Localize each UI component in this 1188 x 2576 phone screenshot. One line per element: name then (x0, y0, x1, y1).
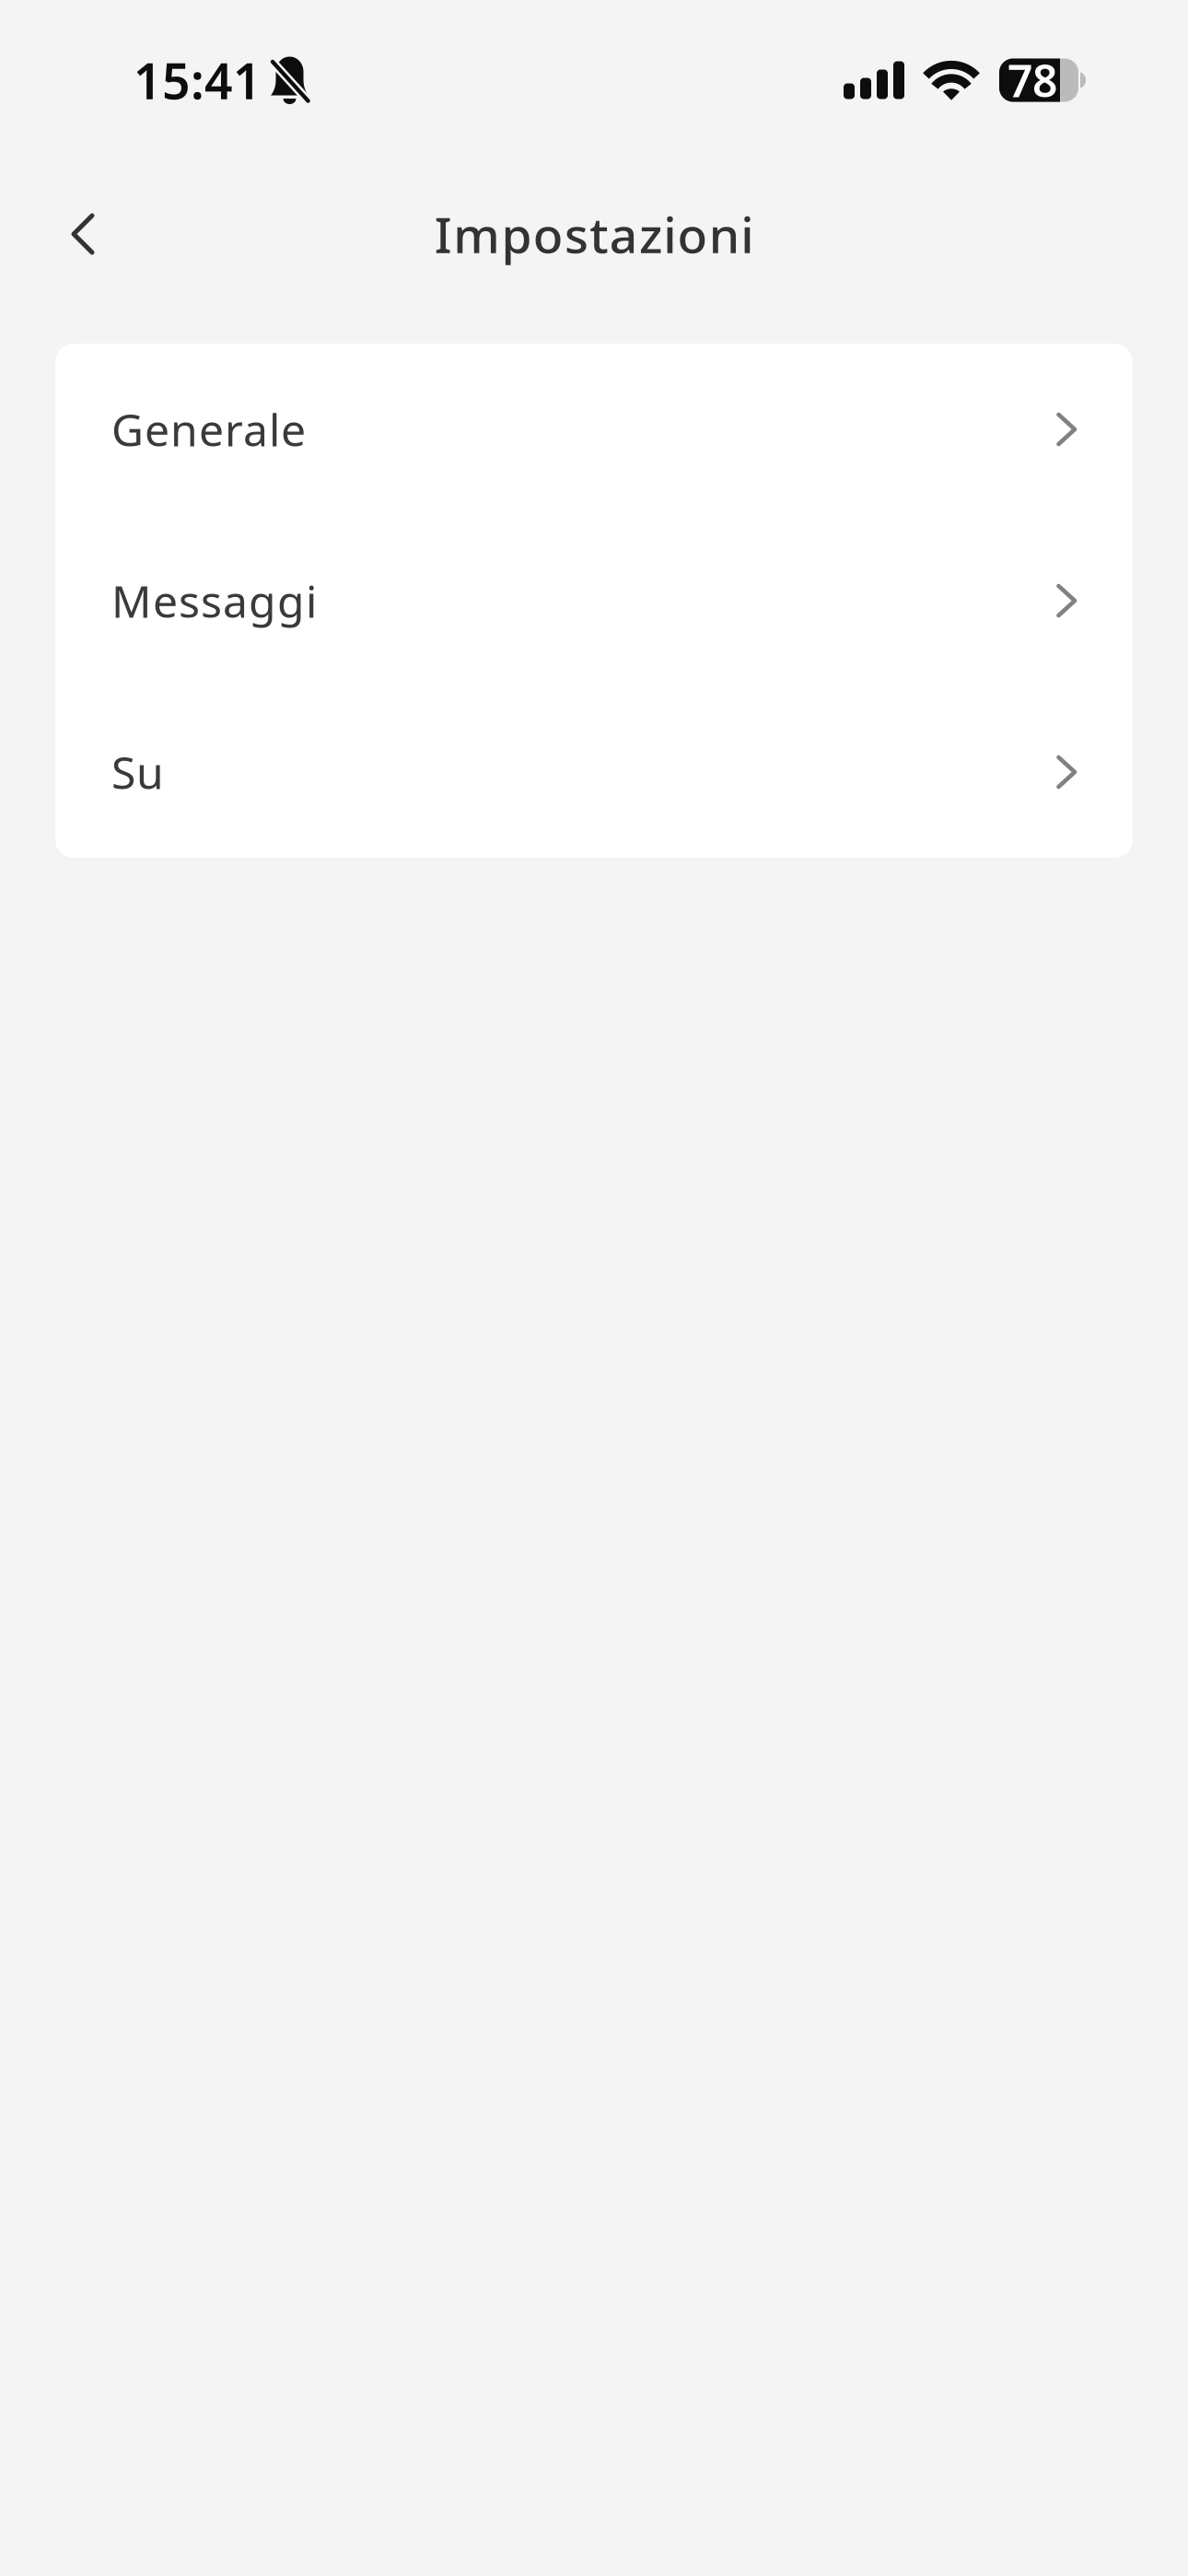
staticText: 78 (1007, 51, 1057, 109)
button[interactable]: Su (55, 686, 1133, 858)
staticText: Generale (111, 400, 306, 459)
button[interactable]: Generale (55, 344, 1133, 515)
button[interactable]: Back (39, 190, 127, 278)
button[interactable]: Messaggi (55, 515, 1133, 686)
staticText: 15:41 (134, 48, 262, 113)
staticText: Su (111, 743, 164, 801)
staticText: Impostazioni (435, 201, 754, 267)
staticText: Messaggi (111, 571, 317, 630)
